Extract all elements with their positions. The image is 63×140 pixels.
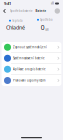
staticText: Baterie (36, 9, 47, 13)
staticText: Teplota (12, 19, 22, 22)
staticText: 0 (41, 23, 45, 32)
button[interactable]: Spotřeba baterie (10, 7, 33, 15)
staticText: kW (45, 28, 48, 32)
button[interactable]: Back (2, 7, 7, 15)
staticText: Aplikace a rozpis baterie (13, 67, 46, 71)
button[interactable]: Systém nastavení baterie (2, 53, 61, 64)
button[interactable]: Aplikace a rozpis baterie (2, 64, 61, 75)
staticText: Plánování úsporný režim (13, 79, 45, 82)
button[interactable]: Plánování úsporný režim (2, 75, 61, 86)
button[interactable]: Baterie (36, 7, 47, 15)
button[interactable]: Zapnout systém nabíjení (2, 42, 61, 53)
staticText: Spotřeba (40, 18, 52, 21)
staticText: Systém nastavení baterie (13, 56, 45, 60)
staticText: Spotřeba baterie (10, 9, 33, 13)
staticText: 9:41 (4, 1, 11, 6)
staticText: ıll (51, 2, 54, 5)
staticText: Chladné (6, 24, 25, 31)
button[interactable]: Account (54, 7, 61, 15)
staticText: Zapnout systém nabíjení (13, 45, 47, 49)
